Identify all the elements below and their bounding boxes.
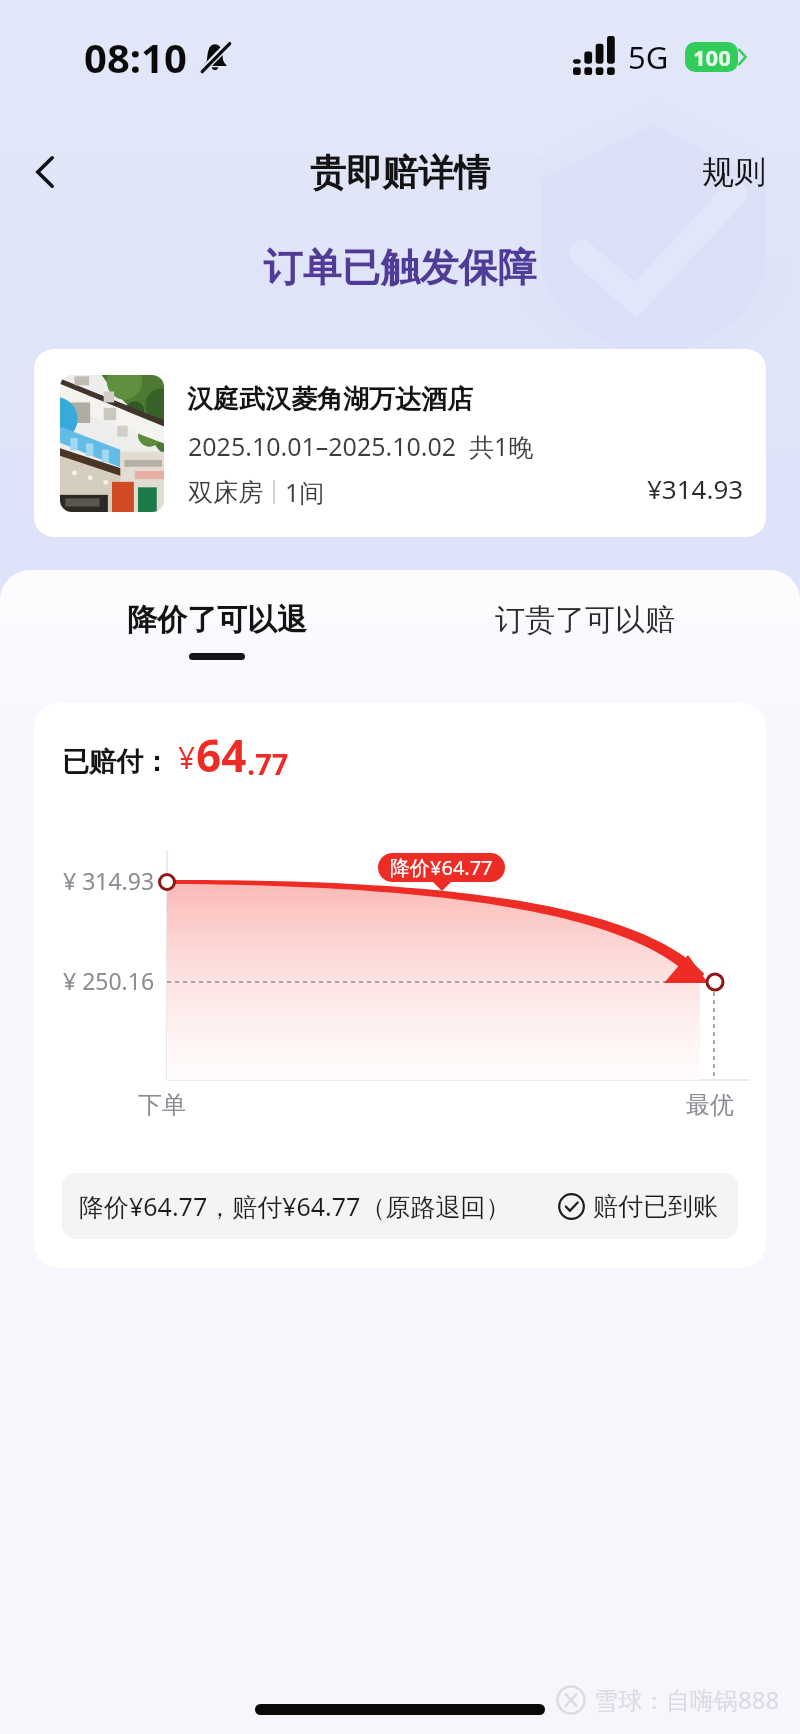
staticText: 2025.10.01–2025.10.02 共1晚 [188,429,534,463]
staticText: 雪球：自嗨锅888 [594,1683,780,1716]
button[interactable]: 降价¥64.77，赔付¥64.77（原路退回） [62,1173,738,1239]
staticText: 贵即赔详情 [310,150,490,195]
staticText: 订单已触发保障 [0,243,800,292]
staticText: ¥314.93 [647,471,744,506]
staticText: ¥ 314.93 [63,865,155,896]
button[interactable]: 订贵了可以赔 [455,601,715,681]
staticText: 100 [693,42,731,72]
staticText: 5G [628,36,669,78]
button[interactable]: 规则 [694,144,774,200]
staticText: 1间 [285,475,325,509]
staticText: 汉庭武汉菱角湖万达酒店 [187,383,473,416]
staticText: 降价¥64.77 [390,854,493,881]
staticText: 规则 [702,152,766,192]
staticText: 订贵了可以赔 [495,601,675,639]
staticText: 下单 [138,1090,186,1120]
staticText: 降价¥64.77，赔付¥64.77（原路退回） [79,1189,511,1223]
staticText: ¥ [178,737,196,778]
staticText: .77 [247,744,289,783]
button[interactable]: Back [14,141,76,203]
staticText: 赔付已到账 [593,1191,718,1222]
button[interactable]: 降价了可以退 [87,601,347,681]
staticText: 最优 [686,1090,734,1120]
staticText: 08:10 [84,30,187,84]
staticText: 64 [196,725,247,785]
staticText: ¥ 250.16 [63,965,155,996]
staticText: 降价了可以退 [127,601,307,639]
staticText: 双床房 [188,477,263,508]
button[interactable]: 汉庭武汉菱角湖万达酒店 [34,349,766,537]
staticText: 已赔付： [62,745,170,779]
